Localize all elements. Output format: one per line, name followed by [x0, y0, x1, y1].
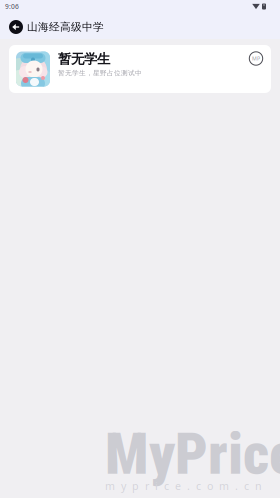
- button[interactable]: 暂无学生: [9, 45, 271, 93]
- staticText: 暂无学生: [58, 51, 110, 67]
- staticText: MyPrice: [105, 421, 280, 488]
- button[interactable]: More: [247, 49, 265, 67]
- staticText: 暂无学生，星野占位测试中: [58, 69, 142, 77]
- button[interactable]: Back: [6, 17, 26, 37]
- staticText: 山海经高级中学: [27, 20, 104, 33]
- staticText: MP: [252, 55, 260, 62]
- staticText: m y p r i c e . c o m . c n: [105, 479, 262, 493]
- staticText: 9:06: [5, 2, 19, 11]
